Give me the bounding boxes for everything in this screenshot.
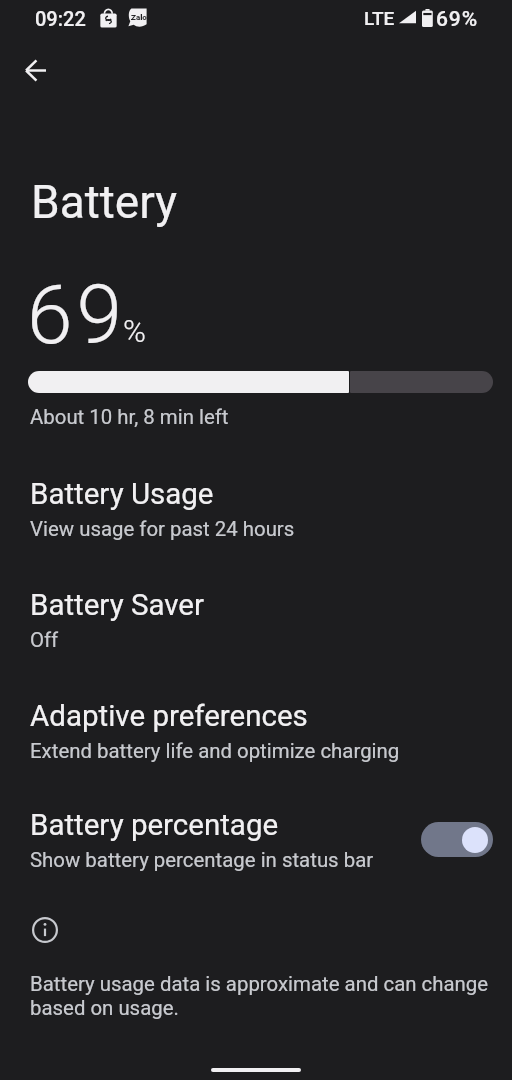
other: Battery 69 percent [422,9,434,27]
staticText: About 10 hr, 8 min left [30,405,229,429]
button[interactable]: Battery Usage [0,477,512,565]
staticText: Battery Saver [30,588,204,623]
staticText: Show battery percentage in status bar [30,848,374,872]
staticText: Battery percentage [30,808,279,843]
staticText: 69% [436,7,479,32]
other: Shopee notification [100,9,117,28]
button[interactable]: Navigate up [11,46,59,94]
button[interactable]: Show battery percentage, on [421,822,493,857]
staticText: Battery [31,175,177,229]
staticText: % [123,313,146,349]
staticText: Battery usage data is approximate and ca… [30,972,495,1020]
staticText: Adaptive preferences [30,699,308,734]
staticText: Extend battery life and optimize chargin… [30,739,400,763]
staticText: Battery Usage [30,477,214,512]
staticText: LTE [364,7,395,29]
staticText: 09:22 [35,7,86,30]
staticText: View usage for past 24 hours [30,517,295,541]
other: Mobile signal full [399,10,416,24]
staticText: 69 [27,267,126,363]
staticText: Off [30,628,59,652]
button[interactable]: Battery percentage [0,806,512,886]
button[interactable]: Battery Saver [0,588,512,676]
staticText: Zalo [131,13,147,22]
other: Information [32,917,58,943]
button[interactable]: Adaptive preferences [0,699,512,787]
other: Zalo notification [128,8,147,27]
